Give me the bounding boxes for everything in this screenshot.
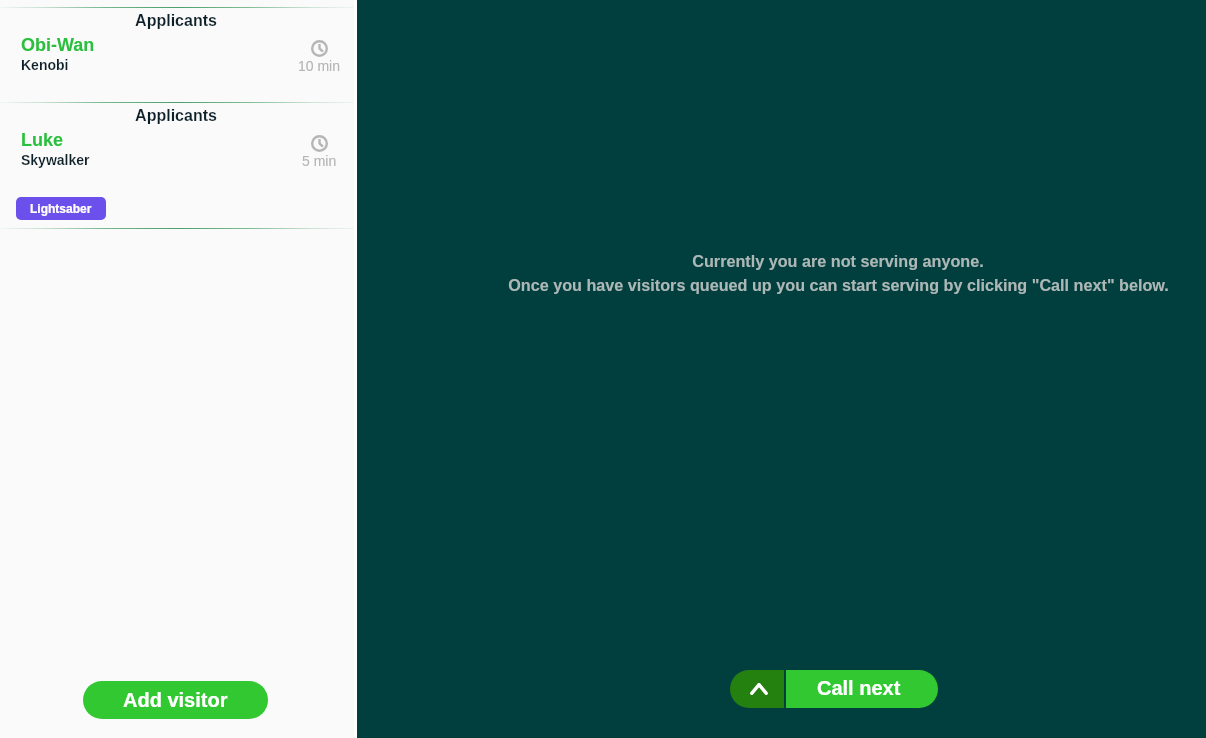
staticText: 10 min — [298, 58, 341, 74]
staticText: Once you have visitors queued up you can… — [508, 276, 1169, 294]
staticText: Applicants — [0, 107, 353, 125]
staticText: Call next — [817, 677, 901, 699]
button[interactable]: Add visitor — [83, 681, 268, 719]
staticText: 5 min — [302, 153, 337, 169]
button[interactable]: Applicants — [0, 102, 354, 228]
staticText: Luke — [21, 130, 64, 150]
staticText: Skywalker — [21, 152, 90, 168]
staticText: Kenobi — [21, 57, 69, 73]
button[interactable]: Call next — [786, 670, 938, 708]
button[interactable]: Lightsaber — [16, 197, 106, 220]
staticText: Applicants — [0, 12, 353, 30]
button[interactable]: Applicants — [0, 7, 354, 102]
staticText: Currently you are not serving anyone. — [692, 252, 984, 270]
staticText: Lightsaber — [30, 202, 92, 215]
staticText: Obi-Wan — [21, 35, 95, 55]
button[interactable]: Show more options — [730, 670, 784, 708]
staticText: Add visitor — [123, 689, 228, 711]
